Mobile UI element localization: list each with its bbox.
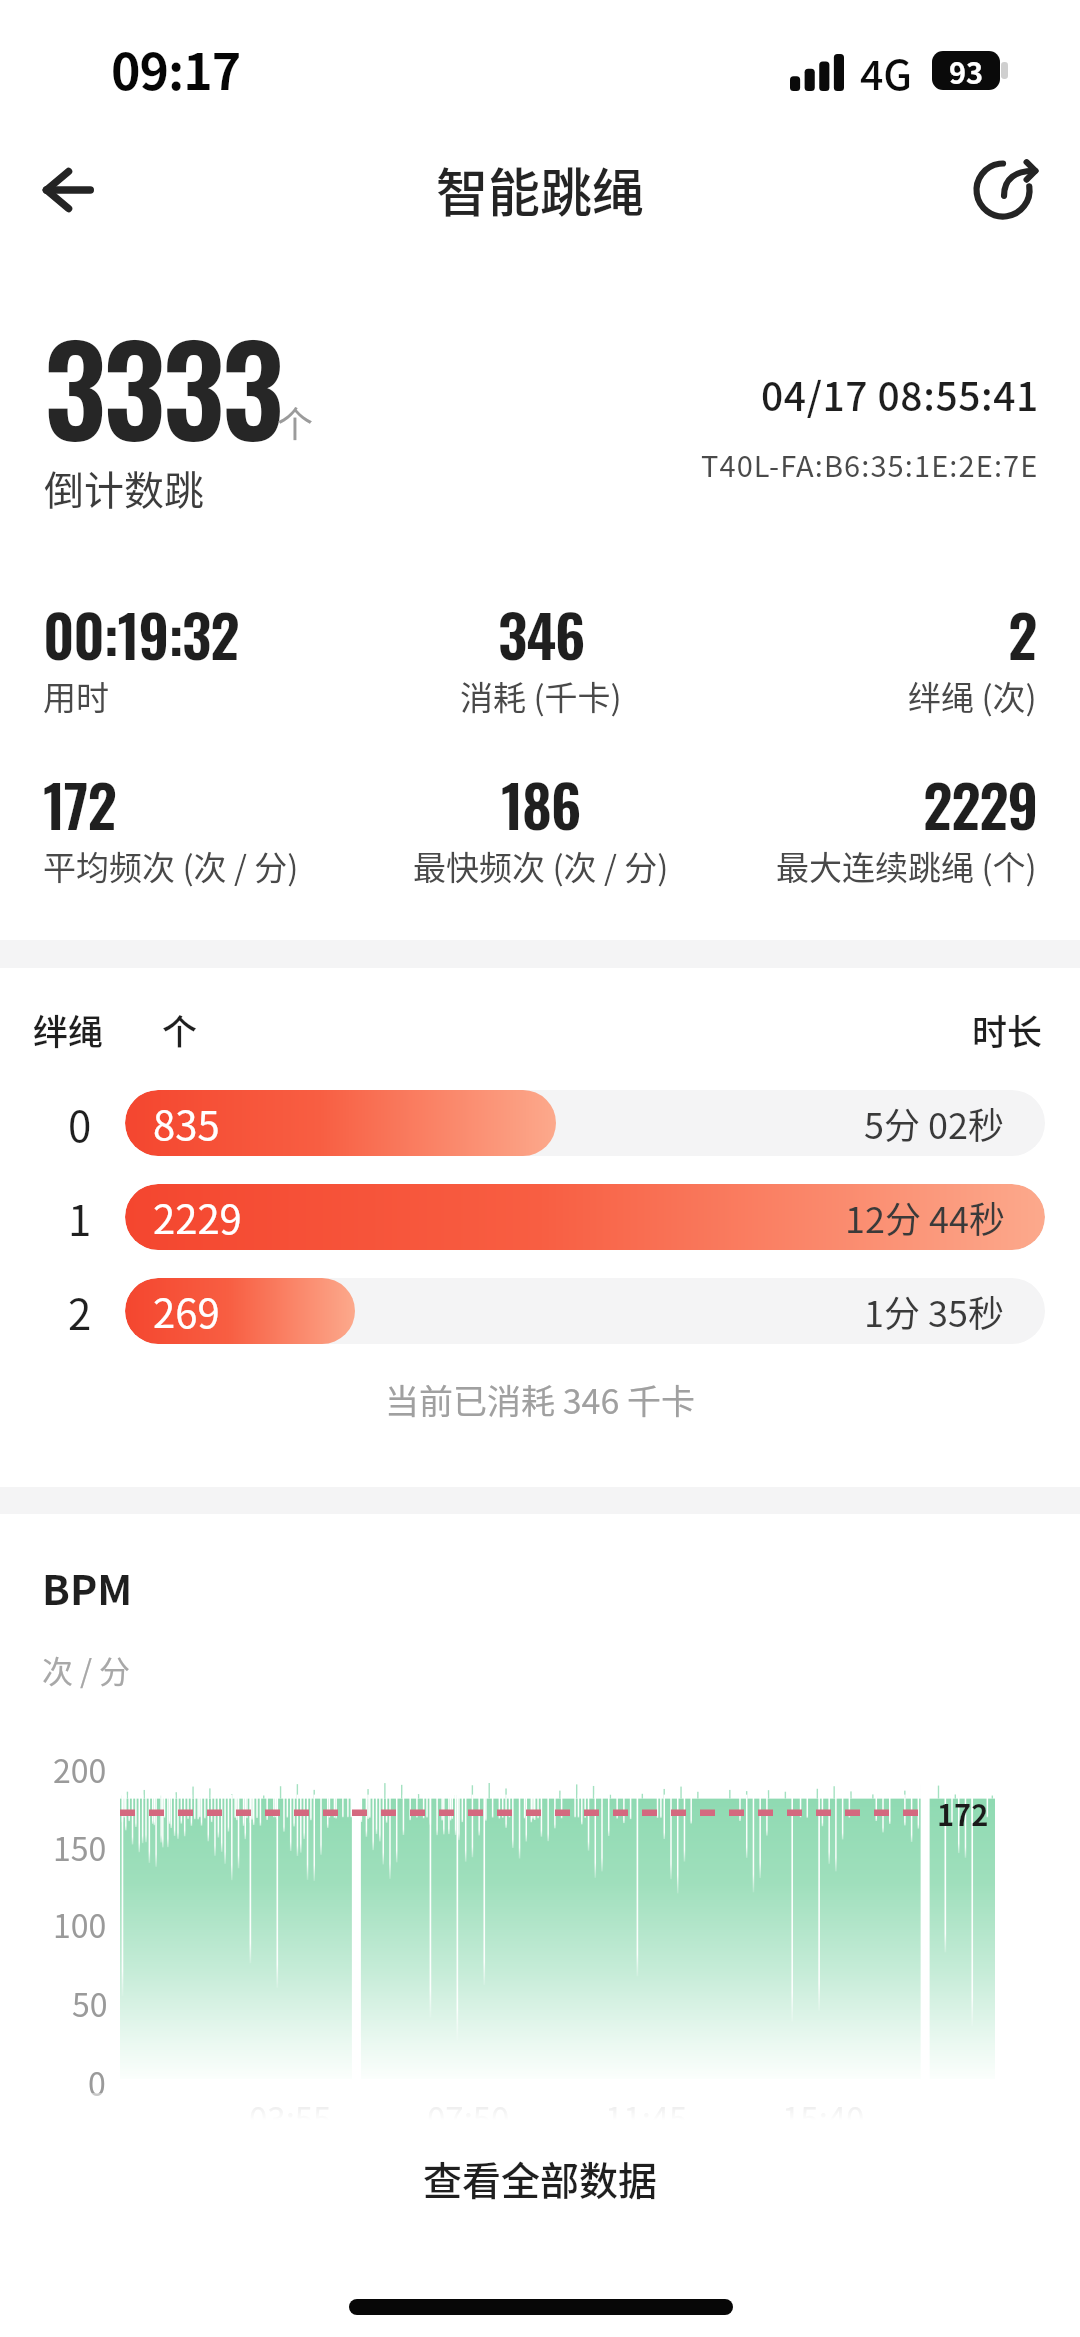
staticText: 2 bbox=[68, 1281, 92, 1342]
staticText: 0 bbox=[88, 2059, 106, 2105]
staticText: 次 / 分 bbox=[42, 1647, 131, 1692]
staticText: 绊绳 bbox=[33, 1004, 104, 1055]
button[interactable]: 查看全部数据 bbox=[0, 2150, 1080, 2206]
button[interactable]: Back bbox=[20, 142, 116, 238]
staticText: 时长 bbox=[972, 1004, 1043, 1055]
staticText: 5分 02秒 bbox=[864, 1097, 1005, 1149]
staticText: T40L-FA:B6:35:1E:2E:7E bbox=[701, 443, 1039, 485]
staticText: 最快频次 (次 / 分) bbox=[413, 842, 669, 890]
staticText: 12分 44秒 bbox=[845, 1191, 1005, 1243]
staticText: 04/17 08:55:41 bbox=[761, 366, 1039, 422]
staticText: 1分 35秒 bbox=[864, 1285, 1005, 1337]
staticText: 50 bbox=[72, 1980, 108, 2026]
staticText: 00:19:32 bbox=[43, 591, 239, 677]
staticText: 835 bbox=[153, 1094, 220, 1152]
staticText: 4G bbox=[860, 42, 913, 101]
staticText: 200 bbox=[53, 1746, 107, 1792]
staticText: 消耗 (千卡) bbox=[460, 672, 622, 720]
staticText: 当前已消耗 346 千卡 bbox=[0, 1375, 1080, 1424]
staticText: 100 bbox=[53, 1901, 107, 1947]
staticText: 倒计数跳 bbox=[44, 459, 204, 517]
button[interactable]: Share bbox=[960, 142, 1056, 238]
staticText: 09:17 bbox=[111, 32, 241, 104]
staticText: 269 bbox=[153, 1282, 220, 1340]
staticText: 2229 bbox=[153, 1188, 242, 1246]
staticText: 1 bbox=[68, 1187, 92, 1248]
staticText: 个 bbox=[162, 1004, 198, 1055]
staticText: 186 bbox=[501, 761, 581, 847]
staticText: 个 bbox=[277, 396, 314, 448]
staticText: 172 bbox=[937, 1792, 989, 1834]
staticText: 2229 bbox=[923, 761, 1037, 847]
staticText: 用时 bbox=[43, 672, 109, 720]
staticText: 93 bbox=[949, 50, 984, 92]
staticText: BPM bbox=[42, 1557, 133, 1616]
staticText: 最大连续跳绳 (个) bbox=[776, 842, 1037, 890]
staticText: 3333 bbox=[44, 293, 281, 475]
staticText: 平均频次 (次 / 分) bbox=[43, 842, 299, 890]
staticText: 绊绳 (次) bbox=[908, 672, 1037, 720]
staticText: 智能跳绳 bbox=[436, 152, 645, 227]
staticText: 172 bbox=[43, 761, 116, 847]
staticText: 150 bbox=[53, 1824, 107, 1870]
staticText: 346 bbox=[498, 591, 585, 677]
staticText: 2 bbox=[1008, 591, 1037, 677]
staticText: 0 bbox=[68, 1093, 92, 1154]
